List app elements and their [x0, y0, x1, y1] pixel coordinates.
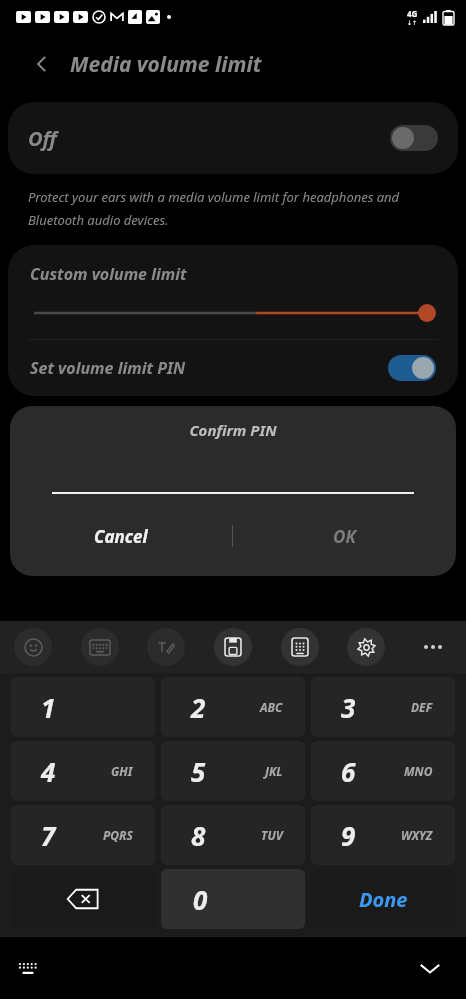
staticText: TUV	[261, 827, 283, 843]
button[interactable]: Cancel	[10, 512, 232, 560]
staticText: 4	[41, 754, 56, 789]
staticText: 5	[191, 754, 206, 789]
staticText: 4G	[407, 8, 418, 19]
staticText: Protect your ears with a media volume li…	[28, 188, 400, 206]
staticText: WXYZ	[401, 827, 433, 843]
staticText: 3	[341, 690, 356, 725]
button[interactable]: Number pad	[281, 628, 319, 666]
staticText: 2	[191, 690, 206, 725]
button[interactable]: Back	[20, 42, 64, 86]
button[interactable]: Emoji	[14, 628, 52, 666]
staticText: JKL	[265, 763, 283, 779]
staticText: 6	[341, 754, 356, 789]
staticText: ↓↑	[407, 19, 418, 26]
staticText: 7	[41, 818, 56, 853]
button[interactable]: Backspace	[11, 869, 155, 929]
staticText: 1	[41, 690, 56, 725]
button[interactable]: 0	[161, 869, 305, 929]
staticText: Confirm PIN	[10, 420, 456, 440]
staticText: Bluetooth audio devices.	[28, 211, 169, 229]
button[interactable]: OK	[233, 512, 456, 560]
staticText: MNO	[404, 763, 433, 779]
button[interactable]: More options	[414, 628, 452, 666]
staticText: Done	[359, 886, 408, 913]
staticText: GHI	[111, 763, 133, 779]
button[interactable]: Off	[8, 102, 458, 174]
staticText: DEF	[411, 699, 433, 715]
staticText: Set volume limit PIN	[30, 357, 186, 379]
button[interactable]: Handwriting	[147, 628, 185, 666]
staticText: Off	[28, 125, 57, 152]
button[interactable]: 1	[11, 677, 155, 737]
staticText: 8	[191, 818, 206, 853]
button[interactable]	[30, 303, 436, 323]
button[interactable]: Switch keyboard	[8, 948, 48, 988]
staticText: ABC	[260, 699, 283, 715]
button[interactable]: 4	[11, 741, 155, 801]
button[interactable]: Settings	[347, 628, 385, 666]
staticText: 9	[341, 818, 356, 853]
button[interactable]: 8	[161, 805, 305, 865]
button[interactable]: Hide keyboard	[408, 946, 452, 990]
button[interactable]: Done	[311, 869, 455, 929]
button[interactable]: 9	[311, 805, 455, 865]
staticText: PQRS	[103, 827, 133, 843]
staticText: 0	[193, 882, 208, 917]
button[interactable]: Set volume limit PIN	[8, 340, 458, 396]
button[interactable]: 7	[11, 805, 155, 865]
staticText: Media volume limit	[70, 50, 262, 79]
button[interactable]: 5	[161, 741, 305, 801]
button[interactable]: Clipboard	[214, 628, 252, 666]
button[interactable]: Keyboard	[81, 628, 119, 666]
staticText: Cancel	[94, 525, 148, 548]
button[interactable]: 6	[311, 741, 455, 801]
button[interactable]: Custom volume limit	[8, 245, 458, 339]
button[interactable]: 3	[311, 677, 455, 737]
staticText: Custom volume limit	[30, 263, 187, 285]
staticText: OK	[333, 525, 356, 548]
button[interactable]: 2	[161, 677, 305, 737]
